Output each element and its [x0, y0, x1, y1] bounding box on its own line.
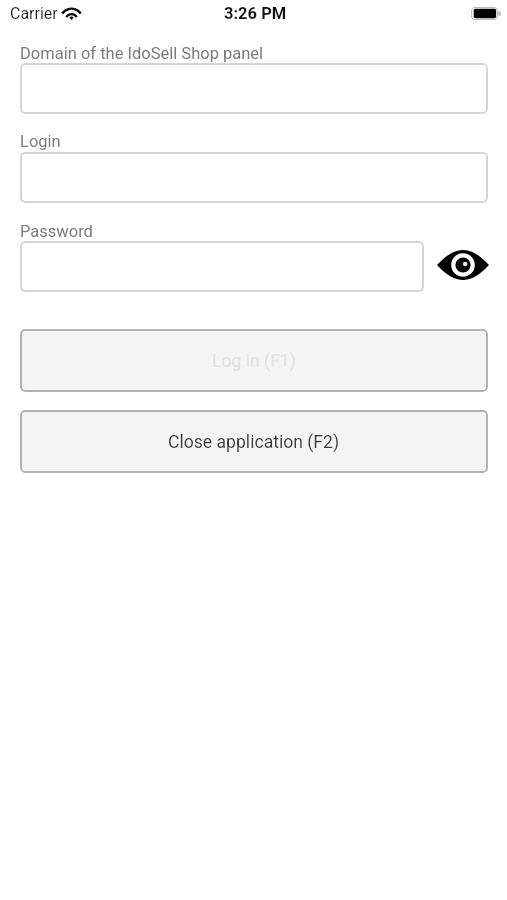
staticText: Domain of the IdoSell Shop panel: [20, 44, 264, 63]
staticText: Close application (F2): [168, 432, 340, 453]
button[interactable]: Password: [20, 241, 424, 292]
other: Wi-Fi signal: [62, 6, 81, 20]
other: Battery full: [471, 7, 501, 20]
button[interactable]: Close application (F2): [20, 410, 488, 473]
button[interactable]: Show password: [437, 250, 489, 280]
button[interactable]: Domain of the IdoSell Shop panel: [20, 63, 488, 114]
staticText: 3:26 PM: [224, 4, 287, 23]
button[interactable]: Log in (F1): [20, 329, 488, 392]
staticText: Password: [20, 222, 93, 241]
button[interactable]: Login: [20, 152, 488, 203]
staticText: Carrier: [10, 4, 58, 23]
staticText: Login: [20, 132, 61, 151]
staticText: Log in (F1): [212, 351, 296, 372]
